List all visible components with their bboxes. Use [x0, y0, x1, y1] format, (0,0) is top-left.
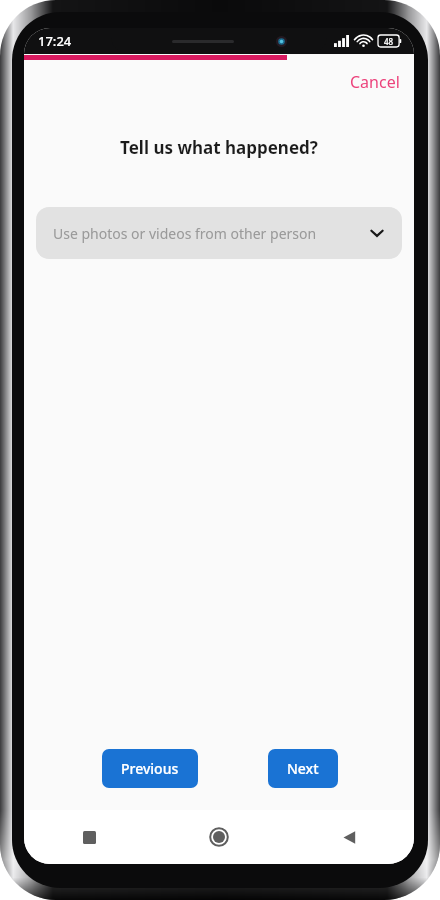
button[interactable]: Next — [268, 749, 338, 788]
button[interactable]: Home — [154, 810, 284, 864]
button[interactable]: Previous — [102, 749, 198, 788]
button[interactable]: Recent apps — [24, 810, 154, 864]
staticText: Previous — [121, 759, 179, 778]
staticText: Use photos or videos from other person — [53, 224, 317, 243]
button[interactable]: Back — [284, 810, 414, 864]
button[interactable]: Cancel — [336, 65, 414, 99]
staticText: Next — [287, 759, 319, 778]
staticText: Cancel — [350, 71, 400, 93]
staticText: 17:24 — [38, 32, 72, 50]
staticText: 48 — [384, 36, 394, 47]
staticText: Tell us what happened? — [24, 136, 414, 159]
button[interactable]: Use photos or videos from other person — [36, 207, 402, 259]
